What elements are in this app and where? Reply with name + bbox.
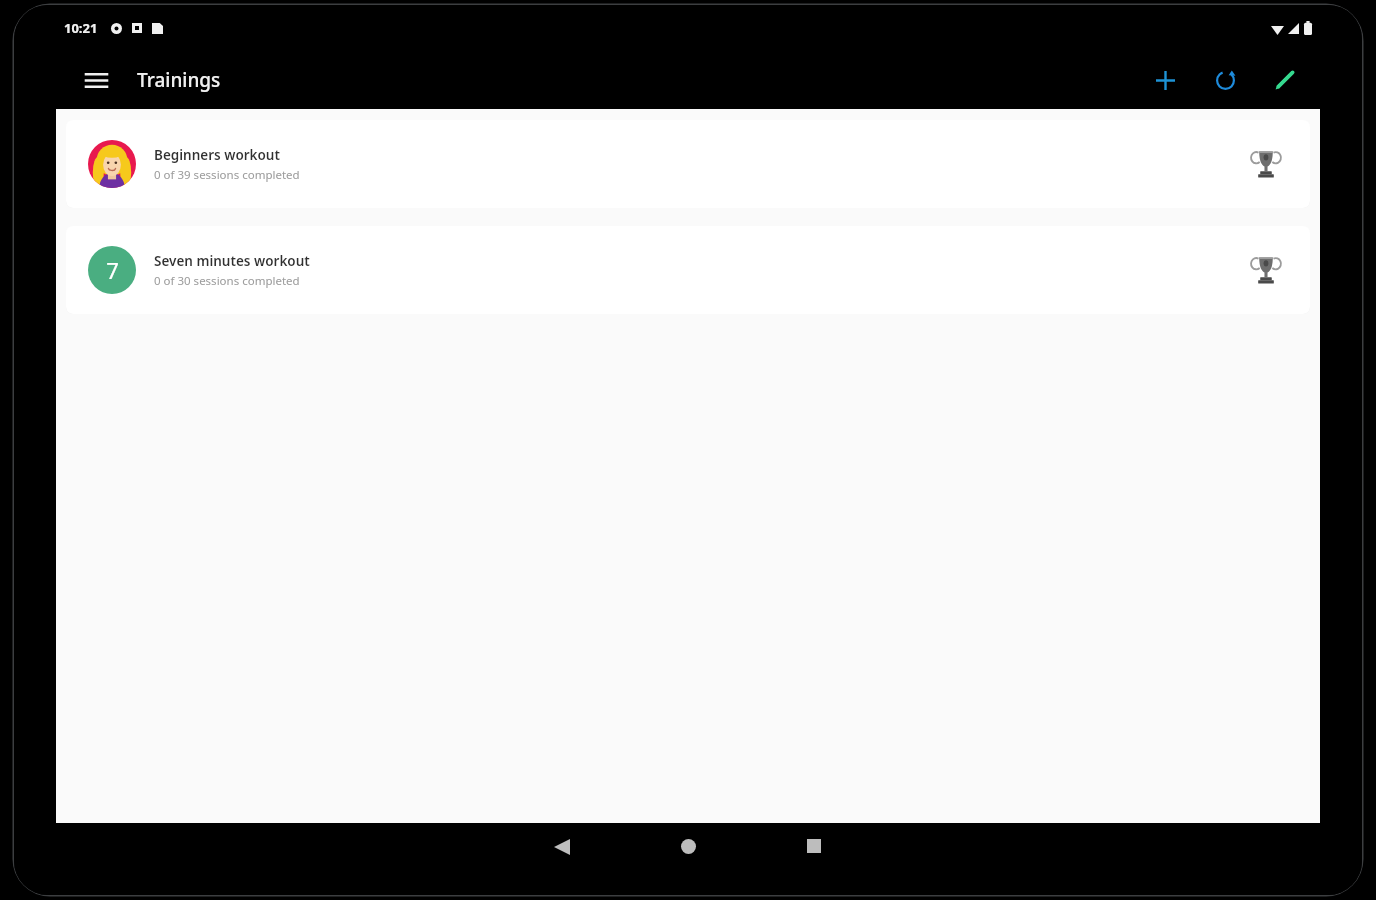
staticText: Beginners workout: [154, 146, 280, 164]
button[interactable]: Achievements trophy: [1244, 142, 1288, 186]
button[interactable]: Edit: [1264, 59, 1306, 101]
button[interactable]: Back: [530, 839, 594, 895]
button[interactable]: Add training: [1144, 59, 1186, 101]
staticText: 0 of 39 sessions completed: [154, 167, 300, 183]
staticText: 10:21: [64, 19, 98, 37]
button[interactable]: Home: [656, 839, 720, 895]
staticText: 0 of 30 sessions completed: [154, 273, 300, 289]
button[interactable]: Open navigation menu: [76, 60, 116, 100]
button[interactable]: 7: [66, 226, 1310, 314]
button[interactable]: Beginners workout: [66, 120, 1310, 208]
button[interactable]: Achievements trophy: [1244, 248, 1288, 292]
staticText: 7: [106, 255, 119, 285]
staticText: Seven minutes workout: [154, 252, 310, 270]
staticText: Trainings: [137, 67, 221, 93]
button[interactable]: Refresh: [1204, 59, 1246, 101]
button[interactable]: Recent apps: [782, 839, 846, 895]
